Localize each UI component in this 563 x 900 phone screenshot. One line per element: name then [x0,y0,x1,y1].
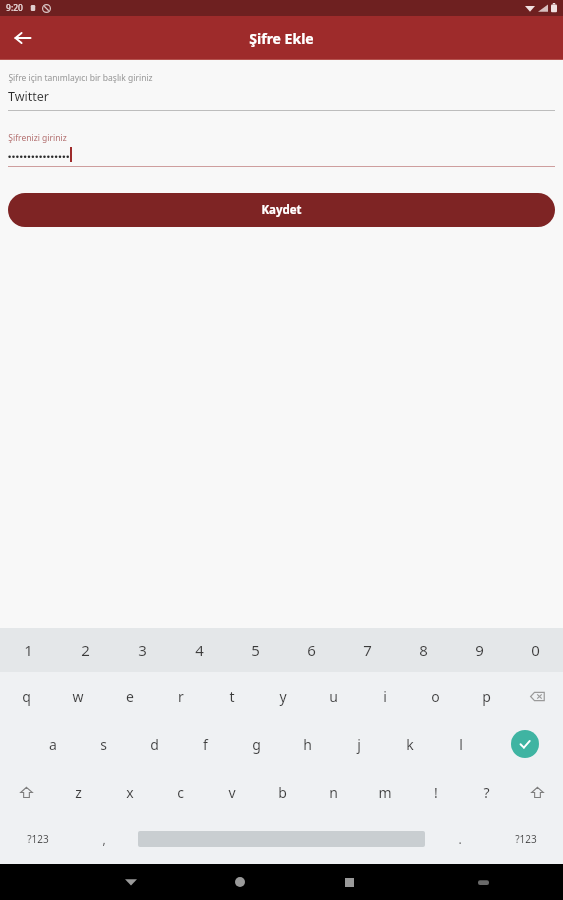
button[interactable]: p [461,672,512,720]
staticText: ! [434,783,438,802]
staticText: i [383,687,387,706]
button[interactable]: e [104,672,155,720]
button[interactable]: g [231,720,282,768]
staticText: Twitter [8,88,49,105]
staticText: ?123 [27,832,49,846]
button[interactable]: Şifre için tanımlayıcı bir başlık girini… [8,72,555,111]
button[interactable]: Şifrenizi giriniz [8,132,555,167]
button[interactable]: y [257,672,308,720]
button[interactable]: 4 [171,628,227,672]
button[interactable]: 8 [395,628,451,672]
staticText: y [279,687,287,706]
button[interactable]: i [359,672,410,720]
button[interactable]: s [78,720,129,768]
button[interactable]: Shift [0,768,52,816]
button[interactable]: x [104,768,155,816]
staticText: c [177,783,184,802]
staticText: ? [483,783,490,802]
button[interactable]: ?123 [488,816,563,862]
button[interactable]: 3 [114,628,171,672]
button[interactable]: 6 [283,628,339,672]
button[interactable]: l [435,720,486,768]
button[interactable]: j [333,720,384,768]
button[interactable]: 1 [0,628,57,672]
staticText: e [126,687,134,706]
staticText: 9:20 [6,2,23,14]
button[interactable]: n [308,768,359,816]
staticText: q [22,687,31,706]
button[interactable]: z [52,768,104,816]
staticText: . [458,831,462,847]
staticText: x [126,783,134,802]
button[interactable]: 5 [227,628,283,672]
staticText: d [150,735,159,754]
button[interactable]: w [52,672,104,720]
button[interactable]: Shift [512,768,563,816]
button[interactable]: Hide keyboard [113,864,149,900]
staticText: w [72,687,84,706]
button[interactable]: Back [6,21,40,55]
staticText: Şifre Ekle [249,29,314,48]
staticText: t [229,687,235,706]
button[interactable]: h [282,720,333,768]
staticText: j [357,735,361,754]
button[interactable]: Home [222,864,258,900]
staticText: s [100,735,107,754]
button[interactable]: u [308,672,359,720]
button[interactable]: Enter [486,720,563,768]
button[interactable]: t [206,672,257,720]
button[interactable]: b [257,768,308,816]
button[interactable]: ? [461,768,512,816]
staticText: 0 [531,640,540,660]
button[interactable]: 9 [451,628,507,672]
staticText: 8 [419,640,428,660]
button[interactable]: Recents [331,864,367,900]
staticText: v [228,783,236,802]
button[interactable]: Backspace [512,672,563,720]
button[interactable]: o [410,672,461,720]
staticText: Kaydet [261,202,302,218]
staticText: a [49,735,57,754]
button[interactable]: Kaydet [8,193,555,227]
button[interactable]: 2 [57,628,114,672]
staticText: 9 [475,640,484,660]
staticText: b [278,783,287,802]
button[interactable]: r [155,672,206,720]
staticText: , [102,831,106,847]
staticText: g [252,735,261,754]
staticText: r [178,687,184,706]
staticText: 5 [251,640,260,660]
button[interactable]: a [27,720,78,768]
staticText: ?123 [515,832,537,846]
button[interactable]: q [0,672,52,720]
button[interactable]: v [206,768,257,816]
staticText: l [459,735,463,754]
staticText: 4 [195,640,204,660]
button[interactable]: ! [410,768,461,816]
staticText: Şifre için tanımlayıcı bir başlık girini… [8,72,153,84]
staticText: f [203,735,208,754]
button[interactable]: k [384,720,435,768]
button[interactable]: c [155,768,206,816]
button[interactable]: m [359,768,410,816]
button[interactable]: Switch keyboard [465,864,501,900]
staticText: 7 [363,640,372,660]
button[interactable]: ?123 [0,816,75,862]
staticText: z [75,783,82,802]
staticText: k [406,735,414,754]
button[interactable]: f [180,720,231,768]
staticText: 1 [24,640,33,660]
staticText: 6 [307,640,316,660]
staticText: p [482,687,491,706]
staticText: u [329,687,338,706]
staticText: 3 [138,640,147,660]
staticText: n [329,783,338,802]
button[interactable]: , [75,816,132,862]
staticText: 2 [81,640,90,660]
button[interactable]: 7 [339,628,395,672]
staticText: m [378,783,392,802]
button[interactable]: 0 [507,628,563,672]
button[interactable]: d [129,720,180,768]
